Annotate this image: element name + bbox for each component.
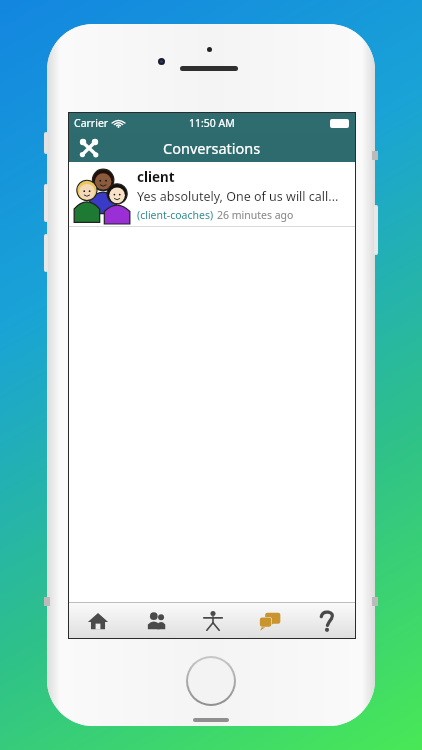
staticText: Yes absolutely, One of us will call... xyxy=(137,188,339,205)
staticText: 26 minutes ago xyxy=(217,208,294,222)
staticText: 11:50 AM xyxy=(189,116,235,130)
button[interactable]: People xyxy=(127,603,184,638)
button[interactable]: Conversations xyxy=(241,603,298,638)
staticText: (client-coaches) xyxy=(137,208,214,222)
button[interactable]: Activity xyxy=(184,603,241,638)
button[interactable]: Settings xyxy=(69,133,109,162)
button[interactable]: Help xyxy=(298,603,355,638)
button[interactable]: Home xyxy=(69,603,127,638)
button[interactable]: Home button xyxy=(188,658,234,704)
staticText: Conversations xyxy=(163,138,261,158)
button[interactable]: client xyxy=(69,162,355,227)
staticText: client xyxy=(137,168,175,186)
staticText: Carrier xyxy=(74,116,109,130)
